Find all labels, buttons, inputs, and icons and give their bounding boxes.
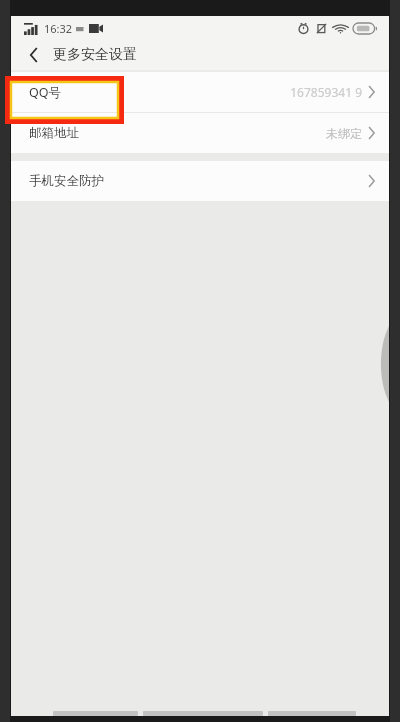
button[interactable]: 手机安全防护 bbox=[11, 161, 389, 201]
button[interactable]: QQ号 bbox=[11, 72, 389, 112]
staticText: 更多安全设置 bbox=[53, 46, 137, 64]
button[interactable]: 返回 bbox=[21, 42, 47, 68]
button[interactable]: 邮箱地址 bbox=[11, 113, 389, 153]
staticText: 未绑定 bbox=[326, 126, 362, 141]
staticText: QQ号 bbox=[29, 84, 62, 101]
staticText: 16:32 bbox=[44, 21, 73, 36]
staticText: 手机安全防护 bbox=[29, 173, 104, 189]
staticText: 167859341 9 bbox=[290, 84, 362, 100]
staticText: 邮箱地址 bbox=[29, 125, 79, 141]
